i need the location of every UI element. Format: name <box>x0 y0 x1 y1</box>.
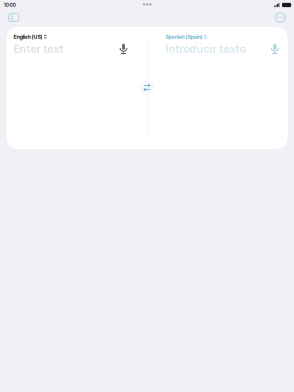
button[interactable]: Start Dictation, Spanish <box>268 42 282 56</box>
button[interactable]: Spanish (Spain) <box>165 33 207 40</box>
button[interactable]: Show Sidebar <box>5 10 23 25</box>
button[interactable]: Swap Languages <box>138 78 156 96</box>
staticText: Enter text <box>13 42 63 55</box>
staticText: Introducir texto <box>165 42 245 55</box>
staticText: 10:00 <box>4 2 16 8</box>
button[interactable]: English (US) <box>13 33 47 40</box>
staticText: English (US) <box>13 33 42 40</box>
button[interactable]: Start Dictation, English <box>116 42 130 56</box>
button[interactable]: More <box>271 10 289 25</box>
staticText: Spanish (Spain) <box>165 33 202 40</box>
